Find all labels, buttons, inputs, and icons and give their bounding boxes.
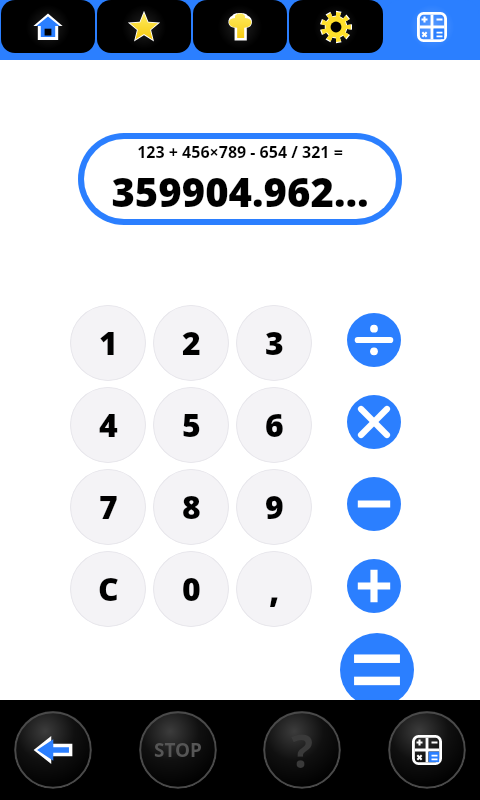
button[interactable]: 6 — [236, 387, 312, 463]
button[interactable]: Home — [1, 0, 95, 53]
button[interactable]: 3 — [236, 305, 312, 381]
staticText: 9 — [265, 485, 284, 529]
button[interactable]: Stop — [139, 711, 217, 789]
staticText: 4 — [99, 403, 118, 447]
staticText: 8 — [182, 485, 201, 529]
staticText: 6 — [265, 403, 284, 447]
staticText: STOP — [154, 737, 202, 763]
staticText: 359904.962… — [111, 164, 369, 218]
button[interactable]: 0 — [153, 551, 229, 627]
button[interactable]: Favourites — [97, 0, 191, 53]
staticText: 2 — [182, 321, 201, 365]
staticText: , — [269, 566, 280, 612]
button[interactable]: 8 — [153, 469, 229, 545]
button[interactable]: 1 — [70, 305, 146, 381]
staticText: 5 — [182, 403, 201, 447]
button[interactable]: 4 — [70, 387, 146, 463]
button[interactable]: 123 + 456×789 - 654 / 321 = — [84, 139, 396, 219]
staticText: 123 + 456×789 - 654 / 321 = — [137, 141, 343, 163]
button[interactable]: 7 — [70, 469, 146, 545]
button[interactable]: Calculator — [385, 0, 479, 53]
staticText: 0 — [182, 567, 201, 611]
staticText: ? — [291, 719, 313, 782]
button[interactable]: Subtract — [347, 477, 401, 531]
button[interactable]: , — [236, 551, 312, 627]
button[interactable]: Add — [347, 559, 401, 613]
button[interactable]: Settings — [289, 0, 383, 53]
button[interactable]: Help — [263, 711, 341, 789]
button[interactable]: Divide — [347, 313, 401, 367]
staticText: 7 — [99, 485, 118, 529]
staticText: C — [98, 567, 119, 611]
button[interactable]: Back — [14, 711, 92, 789]
staticText: 1 — [99, 321, 118, 365]
button[interactable]: 9 — [236, 469, 312, 545]
button[interactable]: Equals — [340, 633, 414, 707]
button[interactable]: 2 — [153, 305, 229, 381]
button[interactable]: Units — [193, 0, 287, 53]
button[interactable]: C — [70, 551, 146, 627]
button[interactable]: 5 — [153, 387, 229, 463]
staticText: 3 — [265, 321, 284, 365]
button[interactable]: Calculator — [388, 711, 466, 789]
button[interactable]: Multiply — [347, 395, 401, 449]
